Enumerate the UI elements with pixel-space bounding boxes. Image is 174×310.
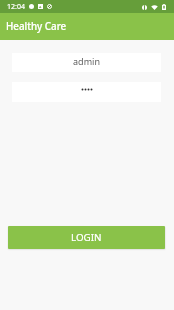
staticText: Healthy Care <box>6 20 67 33</box>
button[interactable]: Username <box>12 53 161 72</box>
button[interactable]: Password <box>12 82 161 102</box>
staticText: 12:04 <box>7 2 25 12</box>
staticText: LOGIN <box>71 231 102 244</box>
staticText: admin <box>73 55 100 67</box>
button[interactable]: LOGIN <box>8 226 165 249</box>
